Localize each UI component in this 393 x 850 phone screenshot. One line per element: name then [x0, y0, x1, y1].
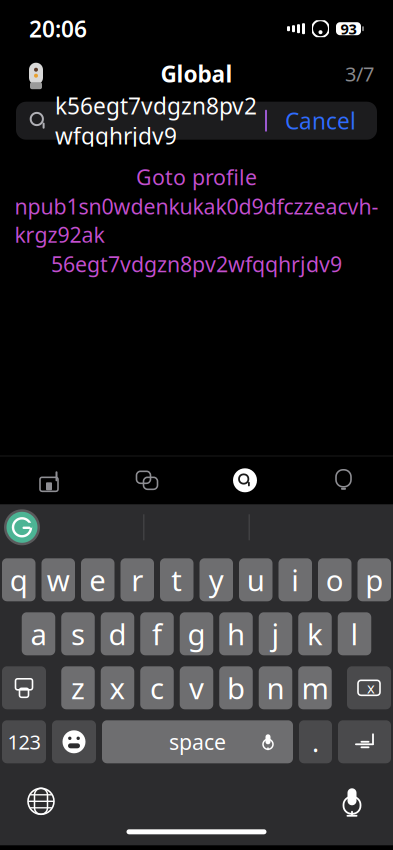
staticText: 123	[7, 728, 40, 755]
staticText: npub1sn0wdenkukak0d9dfczzeacvhkrgz92ak	[14, 192, 378, 249]
button[interactable]: d	[101, 612, 134, 655]
staticText: k56egt7vdgzn8pv2wfqqhrjdv9	[55, 91, 257, 151]
staticText: j	[271, 614, 279, 653]
button[interactable]: Notifications	[294, 456, 393, 504]
button[interactable]: f	[140, 612, 174, 655]
staticText: b	[227, 668, 245, 707]
button[interactable]: i	[278, 558, 312, 601]
staticText: g	[187, 614, 205, 653]
staticText: c	[150, 668, 164, 707]
button[interactable]: n	[259, 666, 292, 709]
button[interactable]: Dictate	[328, 779, 376, 823]
button[interactable]: j	[259, 612, 292, 655]
staticText: Goto profile	[136, 163, 257, 191]
staticText: .	[312, 724, 319, 759]
staticText: a	[30, 614, 46, 653]
staticText: n	[266, 668, 284, 707]
button[interactable]: w	[41, 558, 75, 601]
button[interactable]: y	[199, 558, 233, 601]
button[interactable]: Profile	[19, 57, 53, 91]
button[interactable]: e	[81, 558, 114, 601]
button[interactable]: Home	[0, 456, 98, 504]
staticText: z	[71, 668, 85, 707]
staticText: 3/7	[345, 60, 374, 87]
button[interactable]: s	[61, 612, 95, 655]
staticText: q	[10, 560, 28, 599]
button[interactable]: Messages	[98, 456, 196, 504]
staticText: r	[131, 560, 143, 599]
staticText: x	[367, 678, 375, 698]
button[interactable]: .	[299, 720, 332, 763]
button[interactable]: Switch keyboard	[17, 779, 65, 823]
staticText: v	[189, 668, 204, 707]
button[interactable]: v	[180, 666, 213, 709]
staticText: t	[171, 560, 182, 599]
button[interactable]: b	[219, 666, 253, 709]
staticText: u	[247, 560, 265, 599]
button[interactable]: p	[357, 558, 391, 601]
button[interactable]: Grammarly	[4, 509, 40, 545]
button[interactable]: Emoji	[52, 720, 96, 763]
button[interactable]: o	[318, 558, 351, 601]
button[interactable]: Goto profile	[0, 147, 393, 278]
button[interactable]: l	[338, 612, 371, 655]
button[interactable]: u	[239, 558, 272, 601]
staticText: Global	[160, 59, 232, 89]
staticText: d	[108, 614, 126, 653]
button[interactable]: c	[140, 666, 174, 709]
staticText: 20:06	[29, 14, 87, 44]
button[interactable]: k	[298, 612, 332, 655]
button[interactable]: Cancel	[275, 102, 366, 140]
staticText: p	[365, 560, 383, 599]
staticText: x	[109, 668, 125, 707]
button[interactable]: space	[102, 720, 293, 763]
staticText: k	[307, 614, 323, 653]
button[interactable]: z	[61, 666, 95, 709]
staticText: w	[47, 560, 70, 599]
staticText: h	[227, 614, 245, 653]
button[interactable]: a	[22, 612, 55, 655]
button[interactable]: Search	[196, 456, 294, 504]
staticText: space	[169, 728, 226, 756]
staticText: Cancel	[285, 106, 356, 136]
button[interactable]: r	[120, 558, 154, 601]
staticText: f	[152, 614, 162, 653]
staticText: 93	[340, 19, 356, 38]
staticText: y	[209, 560, 224, 599]
staticText: i	[291, 560, 299, 599]
button[interactable]: Return	[338, 720, 391, 763]
button[interactable]: Delete	[347, 666, 391, 709]
button[interactable]: h	[219, 612, 253, 655]
button[interactable]: m	[298, 666, 332, 709]
button[interactable]: q	[2, 558, 35, 601]
staticText: o	[326, 560, 344, 599]
staticText: 56egt7vdgzn8pv2wfqqhrjdv9	[51, 250, 342, 278]
staticText: e	[89, 560, 106, 599]
button[interactable]: g	[180, 612, 213, 655]
staticText: s	[71, 614, 85, 653]
staticText: m	[301, 668, 328, 707]
button[interactable]: t	[160, 558, 193, 601]
button[interactable]: 123	[2, 720, 46, 763]
staticText: l	[350, 614, 358, 653]
button[interactable]: Shift	[2, 666, 46, 709]
button[interactable]: x	[101, 666, 134, 709]
